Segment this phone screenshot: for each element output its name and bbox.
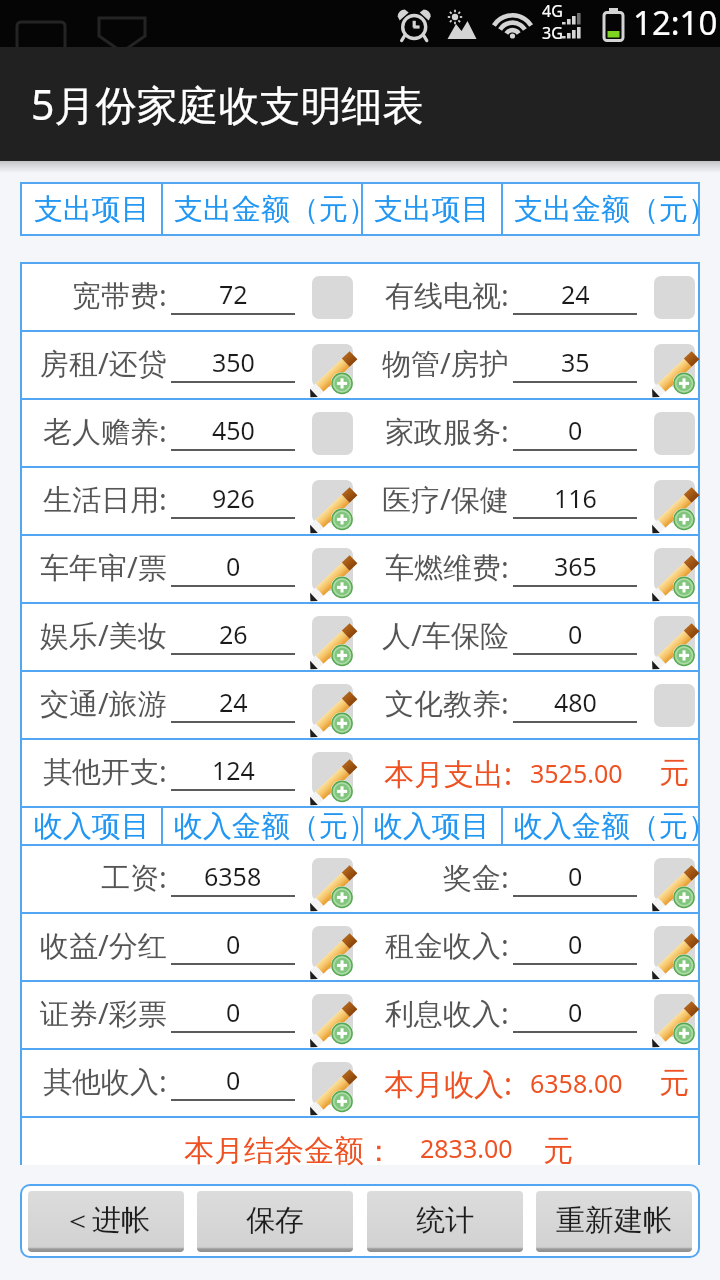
staticText: 重新建帐 — [556, 1202, 672, 1239]
staticText: 支出金额（元） — [514, 191, 709, 228]
button[interactable]: Edit — [312, 276, 353, 319]
staticText: 24 — [561, 277, 590, 311]
staticText: 其他收入: — [43, 1061, 167, 1101]
button[interactable]: 车年审/票 — [22, 536, 364, 602]
button[interactable]: 其他收入: — [22, 1050, 364, 1116]
button[interactable]: 娱乐/美妆 — [22, 604, 364, 670]
button[interactable]: 人/车保险 — [364, 604, 698, 670]
button[interactable]: Edit — [654, 480, 695, 523]
button[interactable]: 医疗/保健 — [364, 468, 698, 534]
staticText: 物管/房护 — [382, 343, 509, 383]
button[interactable]: 老人赡养: — [22, 400, 364, 466]
staticText: 480 — [554, 685, 597, 719]
button[interactable]: 工资: — [22, 846, 364, 912]
staticText: 医疗/保健 — [382, 479, 509, 519]
button[interactable]: 物管/房护 — [364, 332, 698, 398]
button[interactable]: Edit — [312, 616, 353, 659]
button[interactable]: 利息收入: — [364, 982, 698, 1048]
staticText: 元 — [659, 754, 689, 792]
button[interactable]: 证券/彩票 — [22, 982, 364, 1048]
button[interactable]: 奖金: — [364, 846, 698, 912]
button[interactable]: Edit — [654, 276, 695, 319]
staticText: 证券/彩票 — [40, 993, 167, 1033]
button[interactable]: 房租/还贷 — [22, 332, 364, 398]
staticText: 房租/还贷 — [40, 343, 167, 383]
staticText: 6358.00 — [530, 1066, 623, 1100]
staticText: 0 — [568, 413, 583, 447]
button[interactable]: Edit — [654, 616, 695, 659]
staticText: 支出项目 — [34, 191, 150, 228]
staticText: 116 — [554, 481, 597, 515]
staticText: 0 — [226, 927, 241, 961]
staticText: 人/车保险 — [382, 615, 509, 655]
staticText: 5月份家庭收支明细表 — [31, 76, 424, 132]
staticText: 收入项目 — [34, 808, 150, 844]
button[interactable]: Edit — [312, 1062, 353, 1105]
button[interactable]: Edit — [312, 994, 353, 1037]
staticText: 3525.00 — [530, 756, 623, 790]
staticText: 家政服务: — [385, 411, 509, 451]
staticText: 365 — [554, 549, 597, 583]
staticText: 0 — [568, 859, 583, 893]
staticText: 本月结余金额： — [184, 1132, 394, 1170]
button[interactable]: Edit — [312, 480, 353, 523]
staticText: 车燃维费: — [385, 547, 509, 587]
button[interactable]: 本月收入: — [364, 1050, 698, 1116]
staticText: 124 — [212, 753, 255, 787]
staticText: 本月收入: — [384, 1063, 513, 1104]
button[interactable]: 交通/旅游 — [22, 672, 364, 738]
staticText: 0 — [226, 1063, 241, 1097]
button[interactable]: 有线电视: — [364, 264, 698, 330]
button[interactable]: Edit — [312, 752, 353, 795]
staticText: 0 — [568, 995, 583, 1029]
button[interactable]: 本月支出: — [364, 740, 698, 806]
button[interactable]: Edit — [654, 926, 695, 969]
staticText: 车年审/票 — [40, 547, 167, 587]
staticText: 0 — [568, 927, 583, 961]
button[interactable]: 车燃维费: — [364, 536, 698, 602]
staticText: 有线电视: — [385, 275, 509, 315]
staticText: 工资: — [101, 857, 167, 897]
staticText: 12:10 — [633, 0, 718, 45]
button[interactable]: 宽带费: — [22, 264, 364, 330]
button[interactable]: Edit — [654, 412, 695, 455]
button[interactable]: Edit — [312, 412, 353, 455]
staticText: 支出金额（元） — [174, 191, 372, 228]
button[interactable]: 文化教养: — [364, 672, 698, 738]
button[interactable]: 生活日用: — [22, 468, 364, 534]
staticText: 4G — [542, 0, 563, 22]
button[interactable]: Edit — [654, 548, 695, 591]
button[interactable]: Edit — [654, 994, 695, 1037]
staticText: 26 — [219, 617, 248, 651]
button[interactable]: Edit — [312, 684, 353, 727]
button[interactable]: 其他开支: — [22, 740, 364, 806]
button[interactable]: Edit — [312, 926, 353, 969]
button[interactable]: 保存 — [197, 1191, 353, 1252]
staticText: 宽带费: — [72, 275, 167, 315]
staticText: 奖金: — [443, 857, 509, 897]
staticText: 收入金额（元） — [174, 808, 372, 844]
staticText: 利息收入: — [385, 993, 509, 1033]
staticText: 生活日用: — [43, 479, 167, 519]
button[interactable]: 收益/分红 — [22, 914, 364, 980]
staticText: 收入金额（元） — [514, 808, 709, 844]
button[interactable]: Edit — [312, 858, 353, 901]
staticText: 收入项目 — [374, 808, 490, 844]
button[interactable]: Edit — [654, 344, 695, 387]
staticText: 450 — [212, 413, 255, 447]
button[interactable]: Edit — [654, 858, 695, 901]
staticText: 元 — [543, 1132, 573, 1170]
staticText: 支出项目 — [374, 191, 490, 228]
staticText: 2833.00 — [420, 1131, 513, 1165]
button[interactable]: 租金收入: — [364, 914, 698, 980]
button[interactable]: ＜进帐 — [28, 1191, 184, 1252]
button[interactable]: Edit — [312, 548, 353, 591]
button[interactable]: Edit — [654, 684, 695, 727]
button[interactable]: 统计 — [367, 1191, 523, 1252]
button[interactable]: 重新建帐 — [536, 1191, 692, 1252]
staticText: 24 — [219, 685, 248, 719]
staticText: 350 — [212, 345, 255, 379]
staticText: ＜进帐 — [63, 1202, 150, 1239]
button[interactable]: Edit — [312, 344, 353, 387]
button[interactable]: 家政服务: — [364, 400, 698, 466]
